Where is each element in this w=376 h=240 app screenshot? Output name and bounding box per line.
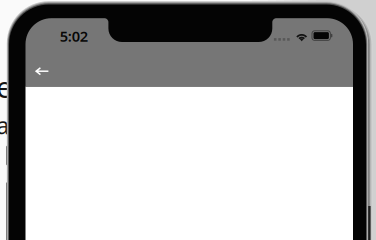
staticText: e — [0, 67, 13, 106]
staticText: a — [0, 110, 9, 140]
button[interactable]: Back — [23, 55, 61, 87]
staticText: 5:02 — [60, 26, 88, 46]
